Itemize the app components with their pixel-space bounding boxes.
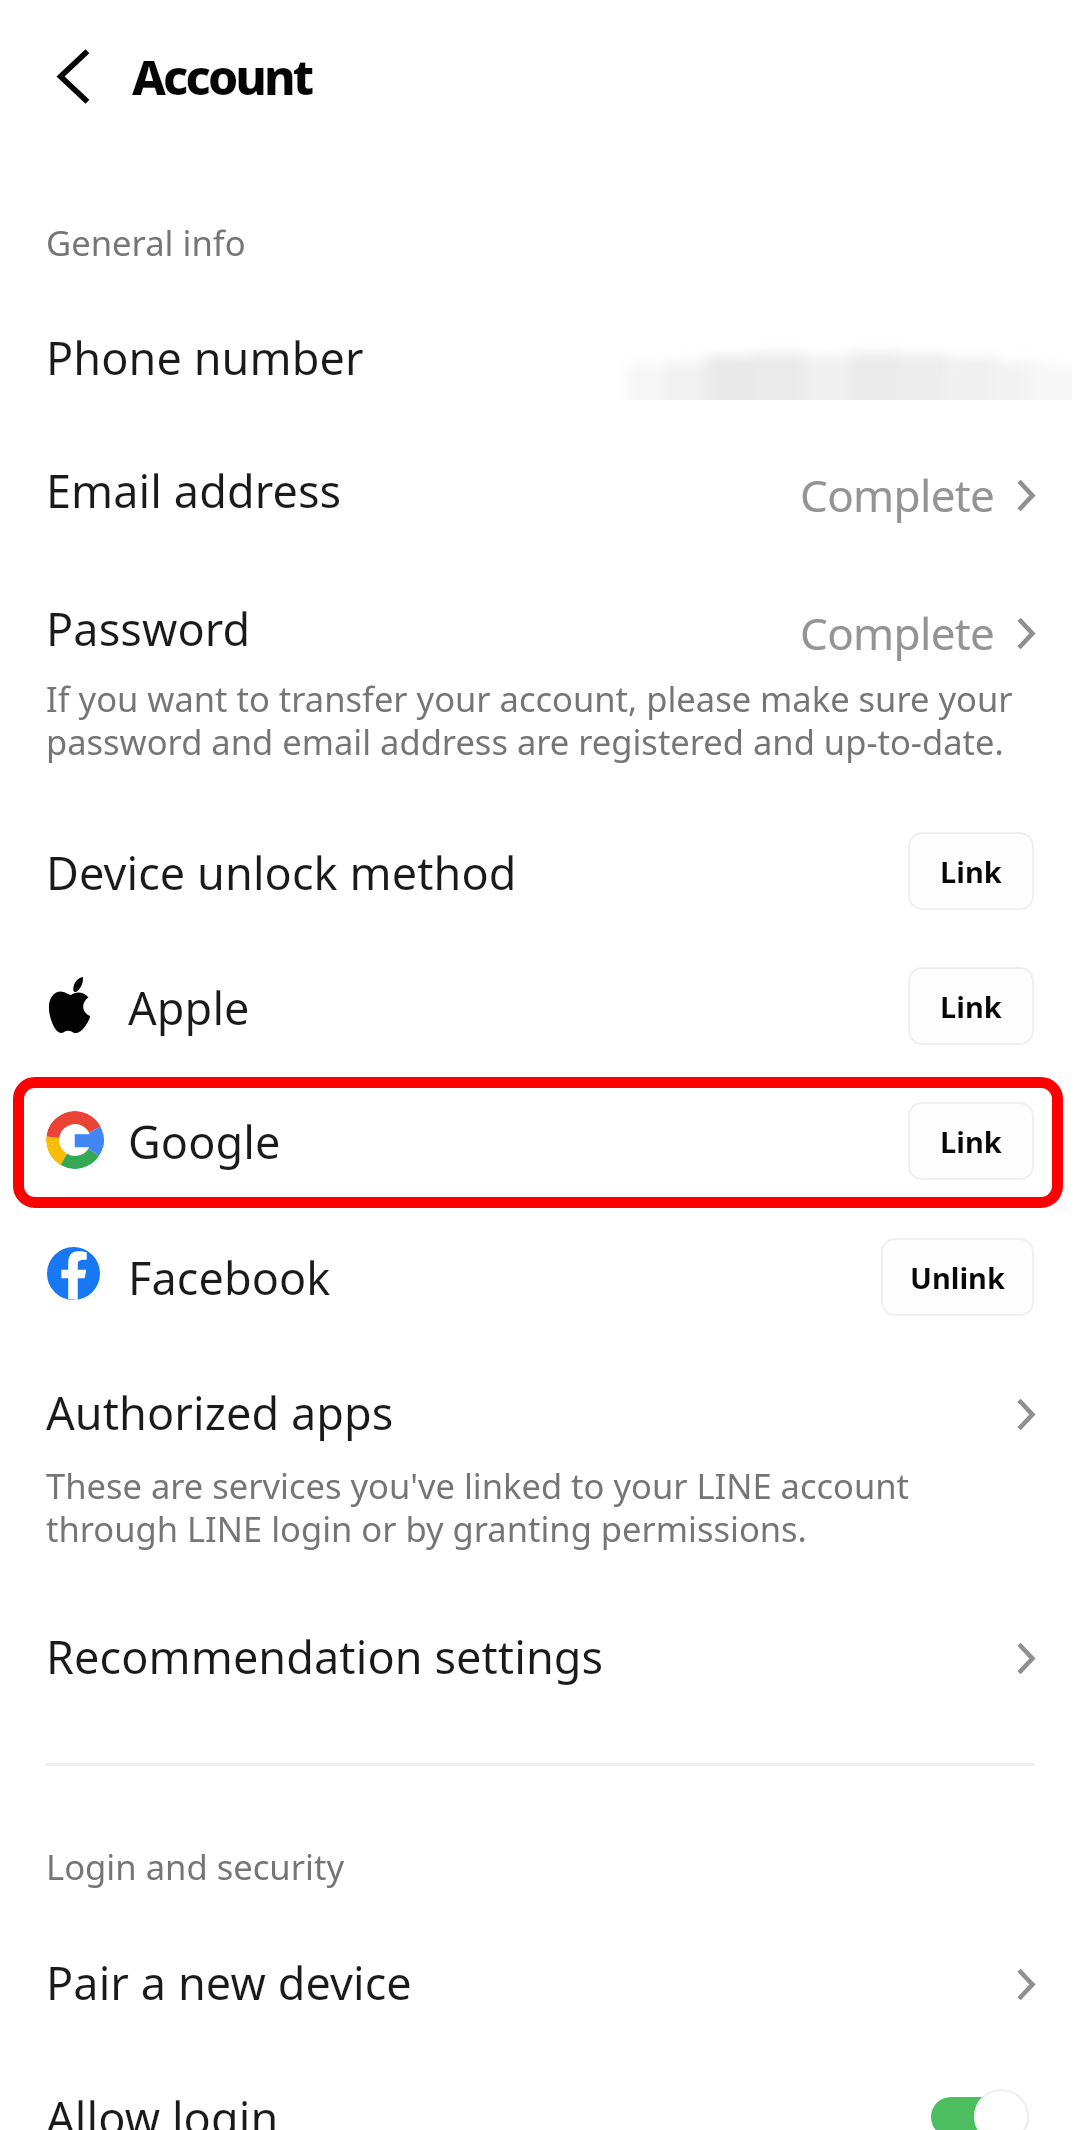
staticText: Login and security bbox=[46, 1843, 345, 1890]
button[interactable]: Back bbox=[22, 26, 126, 126]
staticText: Account bbox=[132, 44, 312, 109]
button[interactable]: Unlink bbox=[881, 1238, 1034, 1316]
button[interactable]: Allow login bbox=[0, 2055, 1080, 2130]
staticText: Device unlock method bbox=[46, 842, 517, 903]
button[interactable]: Email address bbox=[0, 420, 1080, 538]
staticText: Authorized apps bbox=[46, 1382, 394, 1443]
button[interactable]: Authorized apps bbox=[0, 1352, 1080, 1462]
staticText: These are services you've linked to your… bbox=[46, 1462, 946, 1552]
staticText: Password bbox=[46, 598, 251, 659]
staticText: Recommendation settings bbox=[46, 1626, 604, 1687]
button[interactable]: Google bbox=[0, 1080, 1080, 1192]
staticText: If you want to transfer your account, pl… bbox=[46, 675, 1046, 765]
staticText: Phone number bbox=[46, 327, 364, 388]
button[interactable]: Device unlock method bbox=[0, 810, 1080, 920]
staticText: Link bbox=[940, 987, 1002, 1026]
staticText: Pair a new device bbox=[46, 1952, 412, 2013]
staticText: Link bbox=[940, 1122, 1002, 1161]
button[interactable]: Link bbox=[908, 832, 1034, 910]
button[interactable]: Link bbox=[908, 967, 1034, 1045]
button[interactable]: Phone number bbox=[0, 296, 1080, 404]
button[interactable]: Apple bbox=[0, 945, 1080, 1055]
staticText: Link bbox=[940, 852, 1002, 891]
button[interactable]: Link bbox=[908, 1102, 1034, 1180]
staticText: Google bbox=[128, 1111, 281, 1172]
button[interactable]: Facebook bbox=[0, 1215, 1080, 1327]
staticText: Unlink bbox=[910, 1258, 1005, 1297]
staticText: Complete bbox=[800, 465, 995, 525]
staticText: Complete bbox=[800, 603, 995, 663]
button[interactable]: Password bbox=[0, 556, 1080, 674]
button[interactable]: Allow login, on bbox=[931, 2089, 1029, 2130]
staticText: General info bbox=[46, 219, 246, 266]
staticText: Allow login bbox=[46, 2087, 279, 2130]
button[interactable]: Pair a new device bbox=[0, 1920, 1080, 2032]
staticText: Email address bbox=[46, 460, 342, 521]
staticText: Apple bbox=[128, 977, 250, 1038]
staticText: Facebook bbox=[128, 1247, 331, 1308]
button[interactable]: Recommendation settings bbox=[0, 1596, 1080, 1706]
